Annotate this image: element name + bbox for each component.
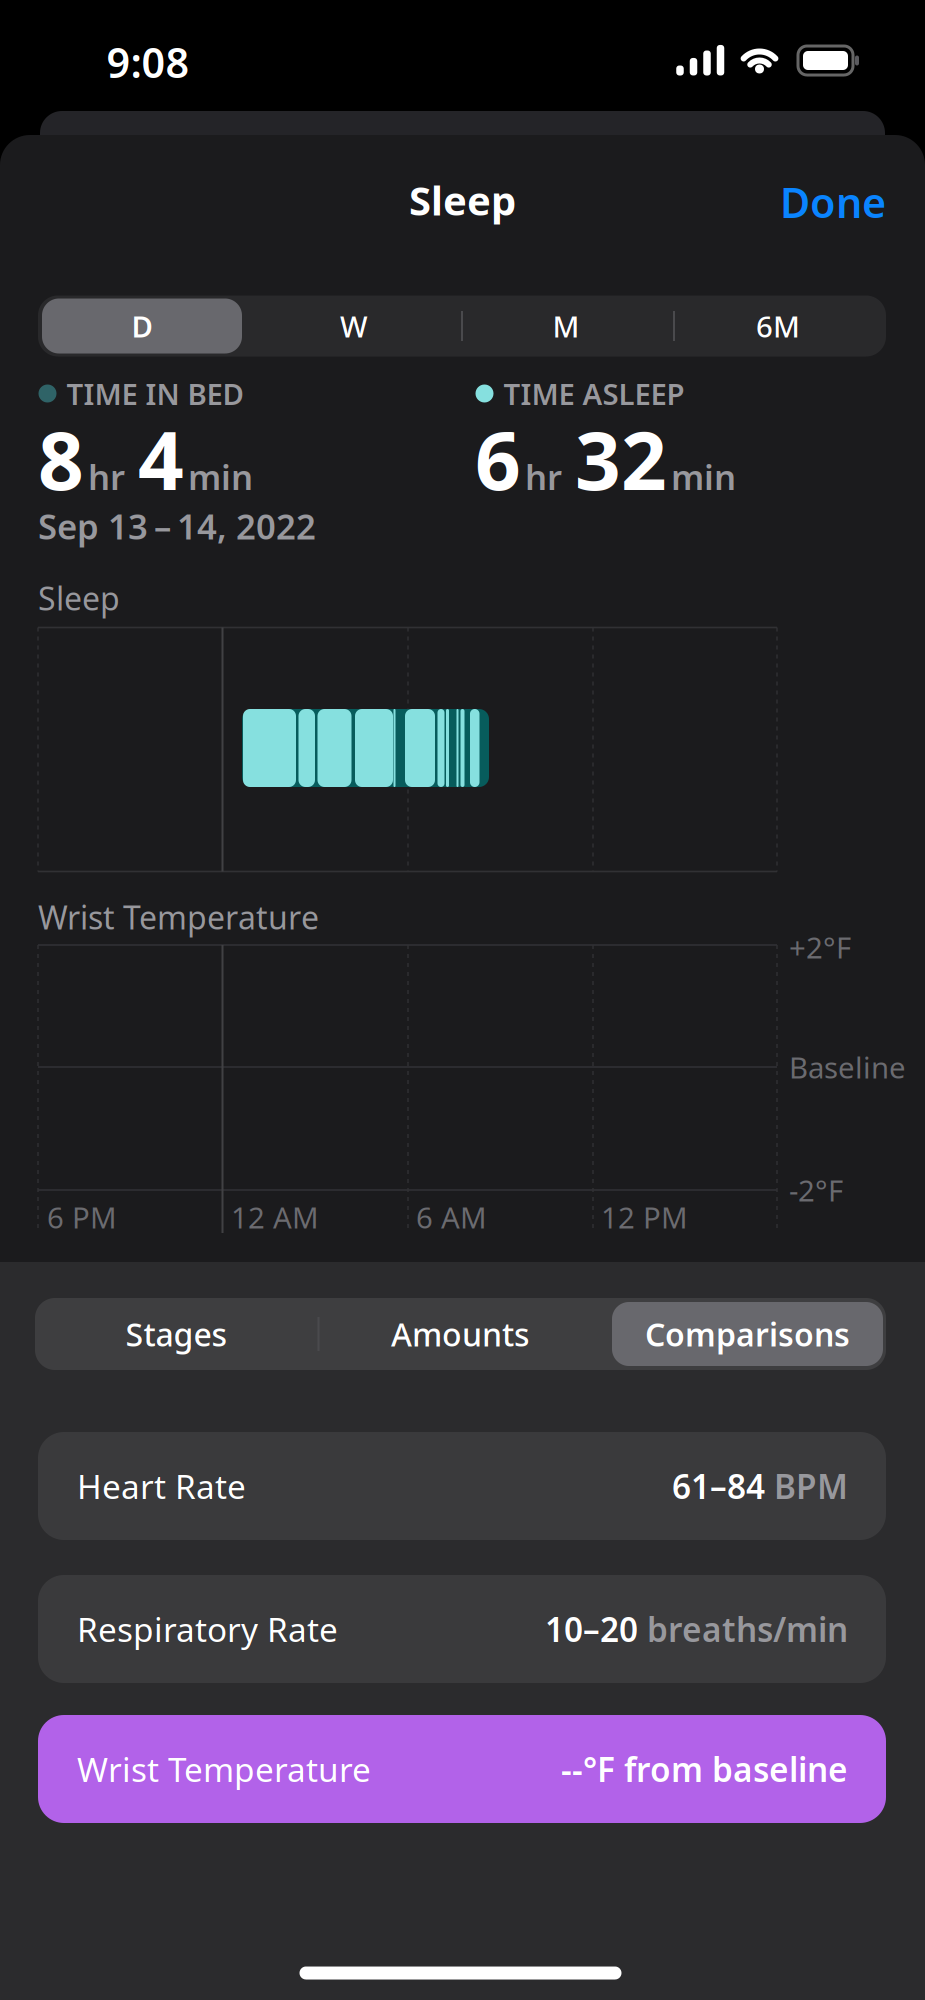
staticText: Heart Rate: [77, 1464, 246, 1508]
staticText: min: [671, 454, 736, 500]
button[interactable]: Stages: [41, 1298, 311, 1370]
staticText: 9:08: [106, 35, 189, 89]
staticText: 6 AM: [416, 1197, 487, 1236]
staticText: Comparisons: [645, 1313, 850, 1355]
staticText: Baseline: [789, 1047, 906, 1086]
button[interactable]: 6M: [675, 295, 881, 356]
staticText: hr: [88, 454, 125, 500]
button[interactable]: Heart Rate: [38, 1432, 886, 1540]
staticText: Sleep: [38, 577, 120, 619]
staticText: 12 PM: [601, 1197, 688, 1236]
staticText: M: [552, 306, 579, 345]
staticText: 10–20: [545, 1607, 638, 1651]
staticText: D: [131, 306, 152, 345]
staticText: BPM: [765, 1464, 848, 1508]
staticText: hr: [525, 454, 562, 500]
staticText: 4: [138, 406, 184, 512]
staticText: +2°F: [789, 927, 851, 966]
staticText: -2°F: [789, 1170, 843, 1209]
staticText: Wrist Temperature: [77, 1747, 371, 1791]
staticText: 61–84: [672, 1464, 765, 1508]
staticText: 12 AM: [231, 1197, 319, 1236]
button[interactable]: Amounts: [325, 1298, 595, 1370]
staticText: 6 PM: [47, 1197, 117, 1236]
staticText: --°F from baseline: [561, 1747, 848, 1791]
staticText: Sep 13 – 14, 2022: [38, 503, 316, 549]
staticText: 6M: [756, 306, 800, 345]
button[interactable]: D: [39, 295, 245, 356]
staticText: breaths/min: [638, 1607, 848, 1651]
button[interactable]: Done: [666, 170, 886, 234]
staticText: Wrist Temperature: [38, 896, 319, 938]
staticText: 6: [475, 406, 521, 512]
button[interactable]: Wrist Temperature: [38, 1715, 886, 1823]
staticText: Respiratory Rate: [77, 1607, 338, 1651]
staticText: W: [340, 306, 368, 345]
button[interactable]: W: [251, 295, 457, 356]
staticText: min: [188, 454, 253, 500]
staticText: TIME ASLEEP: [503, 374, 684, 413]
staticText: Amounts: [391, 1313, 530, 1355]
staticText: TIME IN BED: [66, 374, 243, 413]
button[interactable]: M: [463, 295, 669, 356]
staticText: 8: [38, 406, 84, 512]
button[interactable]: Comparisons: [612, 1298, 882, 1370]
button[interactable]: Respiratory Rate: [38, 1575, 886, 1683]
staticText: Done: [780, 175, 886, 229]
staticText: Sleep: [409, 173, 516, 226]
staticText: Stages: [125, 1313, 227, 1355]
staticText: 32: [575, 406, 667, 512]
